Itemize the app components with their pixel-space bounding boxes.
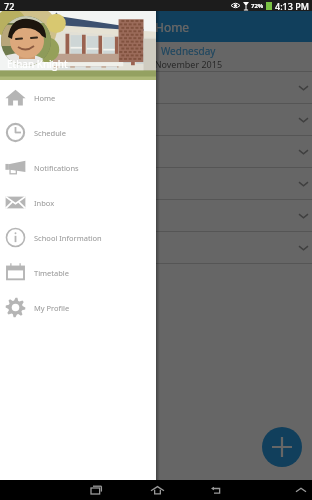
button[interactable]: School Information (0, 220, 156, 255)
button[interactable] (0, 104, 312, 135)
button[interactable]: Timetable (0, 255, 156, 290)
staticText: Home (34, 93, 56, 103)
button[interactable]: Add (262, 427, 302, 467)
button[interactable]: Expand (290, 480, 312, 500)
button[interactable] (0, 136, 312, 167)
button[interactable]: Schedule (0, 115, 156, 150)
button[interactable] (0, 168, 312, 199)
button[interactable] (0, 200, 312, 231)
staticText: Wednesday (161, 44, 216, 58)
staticText: Timetable (34, 268, 70, 278)
button[interactable]: My Profile (0, 290, 156, 325)
button[interactable]: Notifications (0, 150, 156, 185)
staticText: Home (155, 19, 190, 35)
staticText: Ethan Knight (7, 57, 68, 71)
button[interactable]: Back (205, 480, 229, 500)
button[interactable]: Home (145, 480, 169, 500)
button[interactable] (0, 72, 312, 103)
staticText: Notifications (34, 163, 79, 173)
button[interactable]: Home (0, 80, 156, 115)
staticText: My Profile (34, 303, 70, 313)
staticText: Schedule (34, 128, 66, 138)
button[interactable]: Inbox (0, 185, 156, 220)
staticText: 11 November 2015 (142, 58, 223, 70)
staticText: 4:13 PM (275, 0, 309, 11)
button[interactable]: Recents (84, 480, 108, 500)
button[interactable] (0, 232, 312, 263)
staticText: School Information (34, 233, 102, 243)
staticText: 72 (4, 0, 15, 11)
staticText: 72% (251, 2, 264, 10)
staticText: Inbox (34, 198, 55, 208)
